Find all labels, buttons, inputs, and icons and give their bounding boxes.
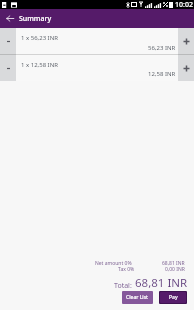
- staticText: Summary: [19, 14, 52, 24]
- button[interactable]: Decrease quantity: [0, 28, 16, 55]
- staticText: Net amount 0%: [95, 260, 132, 267]
- staticText: Pay: [169, 294, 178, 301]
- button[interactable]: Back: [0, 9, 19, 28]
- button[interactable]: 1 x 56,23 INR: [16, 28, 178, 55]
- button[interactable]: Decrease quantity: [0, 55, 16, 81]
- staticText: 1 x 56,23 INR: [21, 34, 58, 42]
- staticText: Total:: [114, 281, 132, 291]
- button[interactable]: 1 x 12,58 INR: [16, 55, 178, 81]
- button[interactable]: Increase quantity: [178, 55, 194, 81]
- staticText: 0,00 INR: [165, 266, 185, 273]
- button[interactable]: Pay: [160, 292, 186, 303]
- staticText: Clear List: [126, 294, 149, 301]
- staticText: 68,81 INR: [162, 260, 185, 267]
- staticText: 56,23 INR: [148, 44, 176, 52]
- staticText: Tax 0%: [118, 266, 135, 273]
- staticText: 68,81 INR: [135, 275, 188, 291]
- staticText: 10:02: [175, 0, 193, 9]
- button[interactable]: Clear List: [122, 291, 153, 304]
- staticText: 12,58 INR: [148, 70, 176, 78]
- staticText: 1 x 12,58 INR: [21, 61, 58, 69]
- button[interactable]: Increase quantity: [178, 28, 194, 55]
